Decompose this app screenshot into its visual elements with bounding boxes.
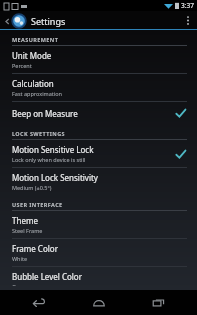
staticText: Theme bbox=[12, 215, 38, 226]
staticText: Green bbox=[12, 283, 28, 286]
button[interactable]: Motion Sensitive Lock bbox=[0, 140, 197, 168]
button[interactable]: Frame Color bbox=[0, 239, 197, 267]
staticText: White bbox=[12, 255, 28, 262]
staticText: Beep on Measure bbox=[12, 108, 78, 119]
staticText: Bubble Level Color bbox=[12, 271, 83, 282]
staticText: 3:37 bbox=[181, 1, 194, 10]
button[interactable]: More options bbox=[183, 11, 193, 30]
button[interactable]: Unit Mode bbox=[0, 46, 197, 74]
staticText: Unit Mode bbox=[12, 50, 52, 61]
staticText: Motion Sensitive Lock bbox=[12, 144, 94, 155]
staticText: Frame Color bbox=[12, 243, 58, 254]
button[interactable]: Beep on Measure bbox=[0, 102, 197, 124]
button[interactable]: Calculation bbox=[0, 74, 197, 102]
button[interactable]: Motion Lock Sensitivity bbox=[0, 168, 197, 195]
staticText: Motion Lock Sensitivity bbox=[12, 172, 98, 183]
staticText: USER INTERFACE bbox=[12, 201, 63, 208]
staticText: Calculation bbox=[12, 78, 54, 89]
staticText: Lock only when device is still bbox=[12, 156, 86, 163]
button[interactable]: Recent apps bbox=[138, 290, 178, 315]
button[interactable]: Bubble Level Color bbox=[0, 267, 197, 290]
staticText: MEASUREMENT bbox=[12, 36, 59, 43]
staticText: Steel Frame bbox=[12, 227, 43, 234]
staticText: Settings bbox=[31, 15, 66, 27]
staticText: Fast approximation bbox=[12, 90, 62, 97]
staticText: Percent bbox=[12, 62, 32, 69]
staticText: Medium (±0.5°) bbox=[12, 184, 52, 191]
button[interactable]: Home bbox=[79, 290, 119, 315]
button[interactable]: Theme bbox=[0, 211, 197, 239]
button[interactable]: Navigate up bbox=[3, 17, 11, 25]
button[interactable]: Back bbox=[19, 290, 59, 315]
staticText: LOCK SWETTINGS bbox=[12, 130, 66, 137]
